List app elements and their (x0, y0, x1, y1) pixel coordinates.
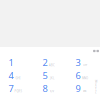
staticText: GHI (15, 76, 20, 80)
staticText: ABC (49, 63, 55, 67)
staticText: DEF (83, 63, 87, 67)
button[interactable]: 9 (0, 0, 100, 100)
staticText: W X Y Z (95, 80, 97, 94)
staticText: 9 (75, 82, 80, 95)
staticText: 3 (75, 56, 80, 69)
staticText: 7 (8, 82, 13, 95)
staticText: 8 (42, 82, 47, 95)
staticText: WX (83, 89, 87, 93)
staticText: 4 (8, 69, 13, 82)
button[interactable]: 7 (0, 0, 100, 100)
button[interactable]: 2 (0, 0, 100, 100)
button[interactable]: 8 (0, 0, 100, 100)
staticText: MNO (82, 76, 88, 80)
staticText: 1 (8, 56, 13, 69)
staticText: 5 (42, 69, 47, 82)
button[interactable]: 4 (0, 0, 100, 100)
staticText: JKL (50, 76, 54, 80)
staticText: PQRS (14, 89, 21, 93)
button[interactable]: 3 (0, 0, 100, 100)
staticText: 6 (75, 69, 80, 82)
button[interactable]: 6 (0, 0, 100, 100)
staticText: 2 (42, 56, 47, 69)
button[interactable]: 5 (0, 0, 100, 100)
staticText: TUV (49, 89, 54, 93)
button[interactable]: 1 (0, 0, 100, 100)
